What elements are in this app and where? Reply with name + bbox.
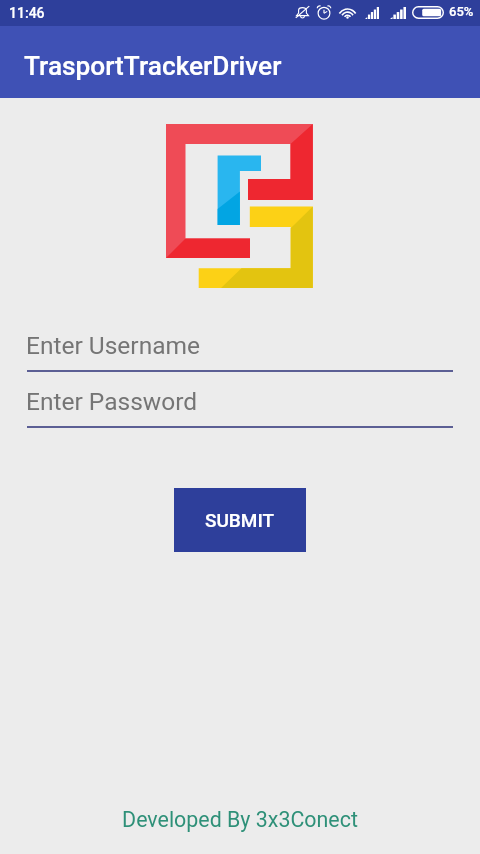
button[interactable]: Enter Username [27, 326, 453, 372]
other: Silent mode [295, 5, 310, 19]
staticText: 11:46 [9, 5, 45, 21]
other: Mobile signal SIM 1 [365, 7, 379, 19]
staticText: 65% [449, 4, 474, 19]
other: Battery 65 percent [412, 6, 444, 19]
button[interactable]: Enter Password [27, 382, 453, 428]
other: Wi-Fi [338, 7, 357, 19]
staticText: SUBMIT [205, 509, 275, 531]
staticText: Developed By 3x3Conect [122, 807, 358, 832]
staticText: Enter Username [26, 331, 201, 360]
other: Mobile signal SIM 2 [390, 7, 406, 19]
other: Alarm set [317, 5, 331, 19]
staticText: TrasportTrackerDriver [24, 51, 282, 82]
button[interactable]: SUBMIT [174, 488, 306, 552]
staticText: Enter Password [26, 387, 198, 416]
